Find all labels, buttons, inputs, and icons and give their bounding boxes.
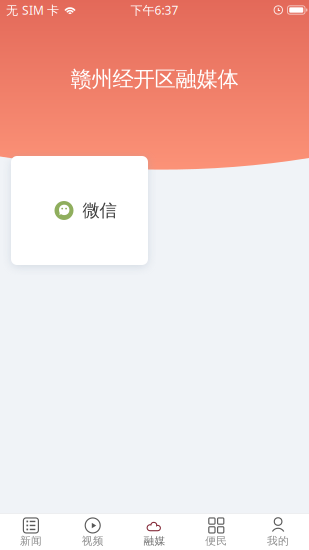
staticText: 融媒: [143, 534, 165, 547]
staticText: 我的: [267, 534, 289, 547]
staticText: 无 SIM 卡: [6, 2, 59, 18]
staticText: 视频: [82, 534, 104, 547]
button[interactable]: 微信: [11, 156, 148, 265]
button[interactable]: 我的: [247, 513, 309, 550]
button[interactable]: 融媒: [124, 513, 185, 550]
button[interactable]: 便民: [185, 513, 247, 550]
button[interactable]: 视频: [62, 513, 124, 550]
button[interactable]: 新闻: [0, 513, 62, 550]
staticText: 赣州经开区融媒体: [70, 66, 238, 92]
staticText: 新闻: [20, 534, 42, 547]
staticText: 下午6:37: [130, 2, 178, 18]
staticText: 微信: [82, 200, 116, 221]
staticText: 便民: [205, 534, 227, 547]
